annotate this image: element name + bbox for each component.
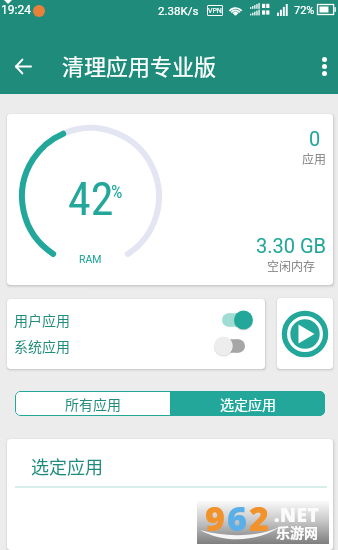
staticText: 6 [227, 495, 249, 538]
staticText: % [111, 181, 123, 202]
staticText: 0 [309, 127, 321, 150]
staticText: 选定应用 [220, 394, 276, 414]
staticText: 所有应用 [65, 394, 121, 414]
button[interactable]: 系统应用 [7, 333, 265, 359]
staticText: 2 [249, 495, 271, 538]
button[interactable]: More options [309, 30, 338, 102]
staticText: 乐游网 [276, 522, 318, 542]
button[interactable]: 用户应用 [7, 307, 265, 333]
button[interactable]: 选定应用 [170, 391, 325, 416]
staticText: 2.38K/s [158, 4, 199, 17]
staticText: 应用 [302, 150, 327, 167]
staticText: 42 [68, 172, 114, 226]
staticText: 用户应用 [14, 310, 70, 330]
staticText: 72% [294, 4, 315, 17]
staticText: .NET [274, 502, 320, 528]
staticText: 9 [205, 495, 227, 538]
staticText: 19:24 [1, 3, 31, 17]
button[interactable]: Start cleaning [277, 298, 333, 369]
button[interactable]: Back [4, 30, 42, 102]
staticText: VPN [208, 7, 222, 15]
staticText: 系统应用 [14, 336, 70, 356]
staticText: 3.30 GB [256, 234, 327, 257]
button[interactable]: 所有应用 [15, 391, 170, 416]
staticText: RAM [79, 253, 102, 265]
staticText: 清理应用专业版 [62, 49, 217, 81]
staticText: 选定应用 [31, 453, 103, 479]
staticText: 空闲内存 [267, 257, 316, 274]
